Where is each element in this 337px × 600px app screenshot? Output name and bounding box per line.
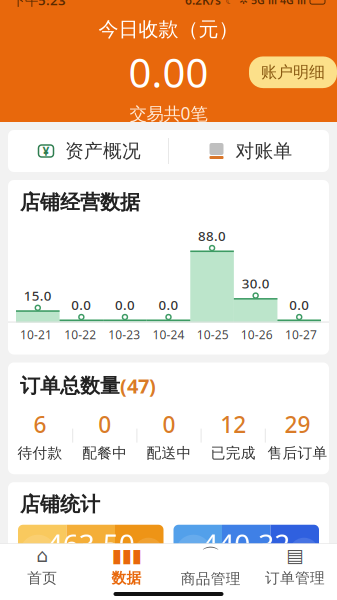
staticText: ☾ ✲ 5G ıll 4G ıll <box>225 0 306 7</box>
staticText: 配送中 <box>146 444 191 462</box>
button[interactable]: 0 <box>73 409 136 462</box>
staticText: 已完成 <box>211 444 256 462</box>
staticText: ⌒ <box>201 544 220 567</box>
staticText: 6 <box>34 409 47 439</box>
staticText: 463.50 <box>47 525 135 562</box>
staticText: 首页 <box>27 569 57 587</box>
staticText: 0.0 <box>115 296 135 314</box>
staticText: 440.32 <box>202 525 290 562</box>
staticText: 店铺经营数据 <box>20 190 140 215</box>
staticText: 成交总金额 <box>58 564 123 580</box>
staticText: 10-24 <box>152 327 184 342</box>
staticText: ¥ <box>42 143 49 159</box>
button[interactable]: ⌂ <box>0 544 84 588</box>
button[interactable]: 463.50 <box>18 525 163 581</box>
staticText: 30.0 <box>242 274 270 292</box>
staticText: 资产概况 <box>65 139 141 162</box>
button[interactable]: ¥ <box>8 130 168 172</box>
button[interactable]: 0 <box>137 409 201 462</box>
button[interactable]: ▤ <box>253 544 337 588</box>
staticText: 10-25 <box>197 327 229 342</box>
staticText: 10-22 <box>64 327 96 342</box>
staticText: 0 <box>162 409 175 439</box>
staticText: 实收总金额 <box>214 564 279 580</box>
staticText: ▮▮▮ <box>111 545 141 566</box>
staticText: 数据 <box>111 569 141 587</box>
button[interactable]: 29 <box>266 409 329 462</box>
staticText: 29 <box>284 409 310 439</box>
staticText: 订单管理 <box>265 569 325 587</box>
staticText: 售后订单 <box>267 444 327 462</box>
staticText: 交易共0笔 <box>129 102 207 125</box>
button[interactable]: 账户明细 <box>249 56 337 88</box>
staticText: 店铺统计 <box>20 492 100 517</box>
staticText: 0.0 <box>158 296 178 314</box>
staticText: 0.0 <box>71 296 91 314</box>
staticText: 10-27 <box>285 327 317 342</box>
staticText: ⌂ <box>36 545 48 566</box>
button[interactable]: 对账单 <box>169 130 329 172</box>
staticText: 10-26 <box>241 327 273 342</box>
staticText: 商品管理 <box>181 570 241 588</box>
staticText: 10-21 <box>20 327 52 342</box>
staticText: ▤ <box>286 545 304 566</box>
staticText: 6.2K/s <box>185 0 221 8</box>
staticText: 账户明细 <box>261 62 325 82</box>
staticText: 0.0 <box>289 296 309 314</box>
button[interactable]: ▮▮▮ <box>84 544 168 588</box>
staticText: 待付款 <box>18 444 63 462</box>
staticText: 对账单 <box>235 139 292 162</box>
staticText: 今日收款（元） <box>98 17 238 42</box>
staticText: 0 <box>98 409 111 439</box>
staticText: 下午5:23 <box>12 0 66 9</box>
button[interactable]: ⌒ <box>168 544 253 588</box>
button[interactable]: 440.32 <box>173 525 319 581</box>
staticText: (47) <box>120 372 156 399</box>
staticText: 订单总数量 <box>20 373 120 398</box>
staticText: 配餐中 <box>82 444 127 462</box>
staticText: 15.0 <box>24 287 52 304</box>
staticText: 12 <box>220 409 246 439</box>
button[interactable]: 6 <box>8 409 72 462</box>
staticText: 10-23 <box>108 327 140 342</box>
button[interactable]: 12 <box>202 409 265 462</box>
staticText: 0.00 <box>128 46 208 99</box>
staticText: 88.0 <box>198 227 226 245</box>
